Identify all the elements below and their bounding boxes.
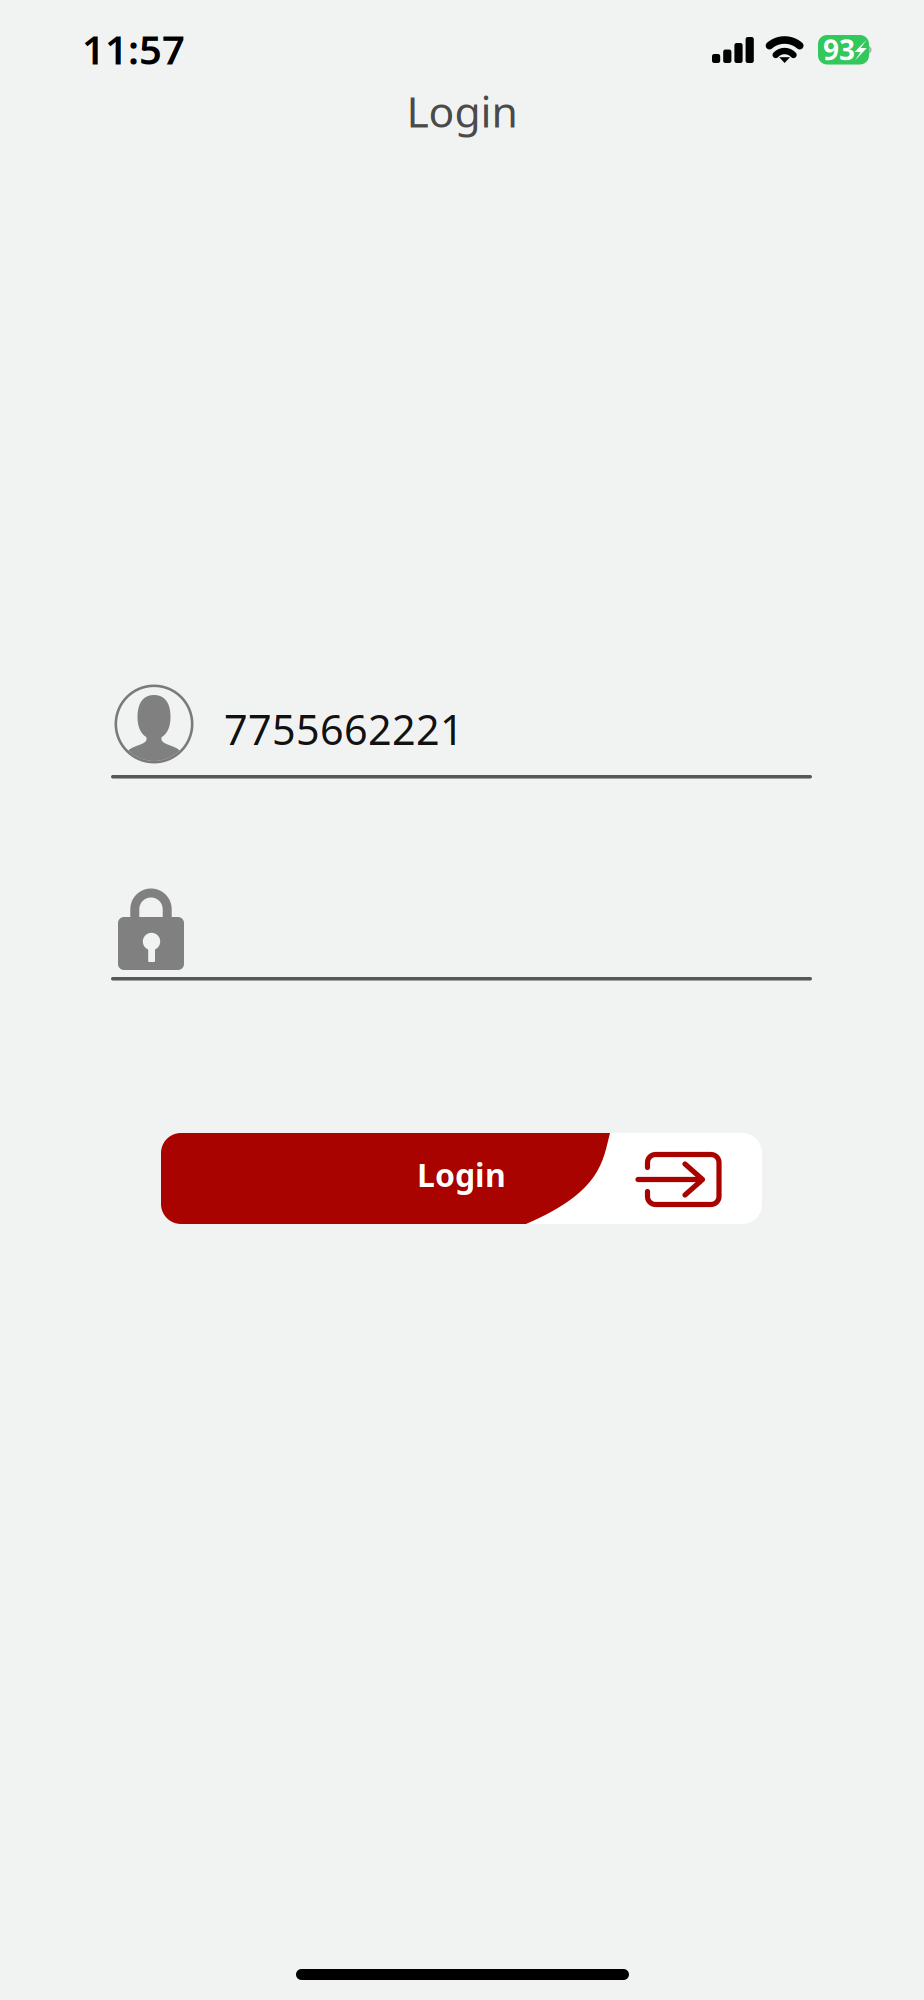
staticText: 7755662221 bbox=[224, 702, 464, 756]
button[interactable]: 7755662221 bbox=[111, 684, 812, 784]
button[interactable]: Login bbox=[161, 1133, 762, 1224]
staticText: Login bbox=[406, 83, 517, 139]
button[interactable]: Password bbox=[111, 884, 812, 981]
staticText: 93 bbox=[823, 31, 855, 68]
staticText: Login bbox=[417, 1153, 506, 1196]
staticText: 11:57 bbox=[82, 22, 185, 75]
